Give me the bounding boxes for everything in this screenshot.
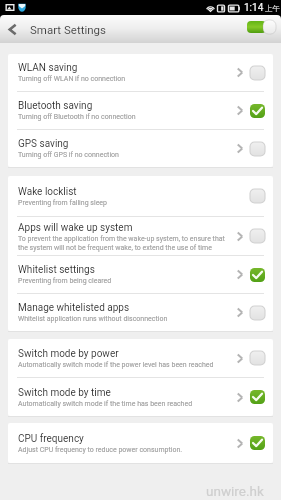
- button[interactable]: Enabled: [250, 268, 265, 282]
- staticText: WLAN saving: [18, 62, 78, 74]
- staticText: To prevent the application from the wake…: [18, 235, 232, 251]
- staticText: CPU frequency: [18, 433, 84, 445]
- staticText: Switch mode by time: [18, 387, 111, 399]
- button[interactable]: Back: [0, 15, 24, 43]
- button[interactable]: Switch mode by time: [8, 378, 273, 416]
- staticText: Automatically switch mode if the time ha…: [18, 400, 193, 408]
- staticText: Turning off WLAN if no connection: [18, 75, 126, 83]
- staticText: Switch mode by power: [18, 348, 119, 360]
- button[interactable]: Disabled: [250, 351, 265, 365]
- button[interactable]: Disabled: [250, 306, 265, 320]
- button[interactable]: Manage whitelisted apps: [8, 294, 273, 331]
- button[interactable]: WLAN saving: [8, 54, 273, 91]
- button[interactable]: Whitelist settings: [8, 256, 273, 293]
- button[interactable]: Wake locklist: [8, 176, 273, 216]
- staticText: unwire.hk: [206, 483, 264, 499]
- button[interactable]: Disabled: [250, 229, 265, 243]
- button[interactable]: Apps will wake up system: [8, 217, 273, 255]
- button[interactable]: Bluetooth saving: [8, 92, 273, 129]
- staticText: Whitelist application runs without disco…: [18, 315, 168, 323]
- button[interactable]: Enabled: [250, 436, 265, 450]
- staticText: 上午: [265, 4, 280, 13]
- button[interactable]: GPS saving: [8, 130, 273, 167]
- staticText: Automatically switch mode if the power l…: [18, 361, 214, 369]
- button[interactable]: CPU frequency: [8, 423, 273, 463]
- button[interactable]: Enabled: [250, 104, 265, 118]
- staticText: Preventing from falling sleep: [18, 199, 107, 207]
- button[interactable]: Toggle smart settings: [247, 15, 276, 43]
- staticText: Turning off Bluetooth if no connection: [18, 113, 136, 121]
- button[interactable]: Disabled: [250, 189, 265, 203]
- button[interactable]: Switch mode by power: [8, 339, 273, 377]
- staticText: Bluetooth saving: [18, 100, 93, 112]
- staticText: Whitelist settings: [18, 264, 95, 276]
- staticText: Apps will wake up system: [18, 222, 133, 234]
- staticText: Smart Settings: [30, 23, 106, 36]
- staticText: 1:14: [244, 2, 264, 14]
- button[interactable]: Enabled: [250, 390, 265, 404]
- staticText: Preventing from being cleared: [18, 277, 112, 285]
- staticText: Wake locklist: [18, 186, 77, 198]
- staticText: Manage whitelisted apps: [18, 302, 130, 314]
- staticText: Turning off GPS if no connection: [18, 151, 119, 159]
- button[interactable]: Disabled: [250, 142, 265, 156]
- staticText: Adjust CPU frequency to reduce power con…: [18, 446, 183, 454]
- staticText: GPS saving: [18, 138, 69, 150]
- button[interactable]: Disabled: [250, 66, 265, 80]
